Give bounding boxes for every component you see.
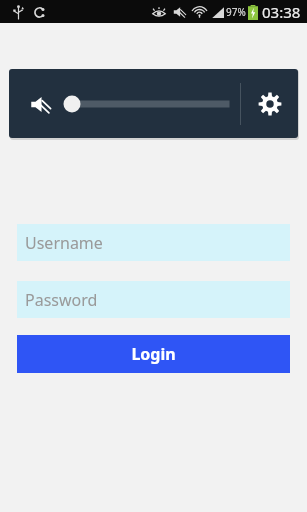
staticText: Password: [25, 289, 98, 311]
button[interactable]: Login: [17, 335, 290, 373]
staticText: 97%: [226, 5, 246, 19]
button[interactable]: Username: [17, 224, 290, 261]
button[interactable]: Mute: [23, 87, 57, 121]
staticText: Login: [131, 343, 176, 365]
button[interactable]: Volume slider: [62, 84, 240, 124]
button[interactable]: Password: [17, 281, 290, 318]
staticText: 03:38: [262, 2, 301, 22]
staticText: Username: [25, 232, 103, 254]
button[interactable]: Settings: [241, 69, 298, 138]
